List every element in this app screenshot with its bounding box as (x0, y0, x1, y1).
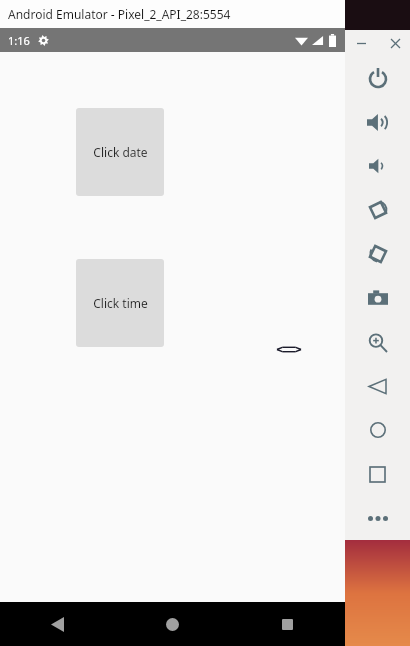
button[interactable]: Rotate left (345, 188, 410, 232)
button[interactable]: Close (385, 33, 405, 53)
button[interactable]: Home (345, 408, 410, 452)
button[interactable]: Screenshot (345, 276, 410, 320)
button[interactable]: Rotate right (345, 232, 410, 276)
staticText: Click time (93, 295, 148, 311)
staticText: 1:16 (8, 33, 30, 48)
button[interactable]: More (345, 496, 410, 540)
button[interactable]: Click date (76, 108, 164, 196)
button[interactable]: Overview (345, 452, 410, 496)
button[interactable]: Back (0, 602, 115, 646)
button[interactable]: Volume up (345, 100, 410, 144)
button[interactable]: Power (345, 56, 410, 100)
button[interactable]: Volume down (345, 144, 410, 188)
staticText: Click date (93, 144, 148, 160)
button[interactable]: Recent apps (230, 602, 345, 646)
button[interactable]: Click time (76, 259, 164, 347)
button[interactable]: Minimize (351, 33, 371, 53)
button[interactable]: Home (115, 602, 230, 646)
staticText: Android Emulator - Pixel_2_API_28:5554 (8, 6, 231, 22)
button[interactable]: Zoom (345, 320, 410, 364)
button[interactable]: Back (345, 364, 410, 408)
